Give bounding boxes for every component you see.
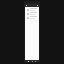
button[interactable]: Menu [25, 4, 39, 7]
button[interactable] [26, 12, 38, 15]
button[interactable] [26, 16, 38, 19]
button[interactable] [26, 8, 38, 11]
